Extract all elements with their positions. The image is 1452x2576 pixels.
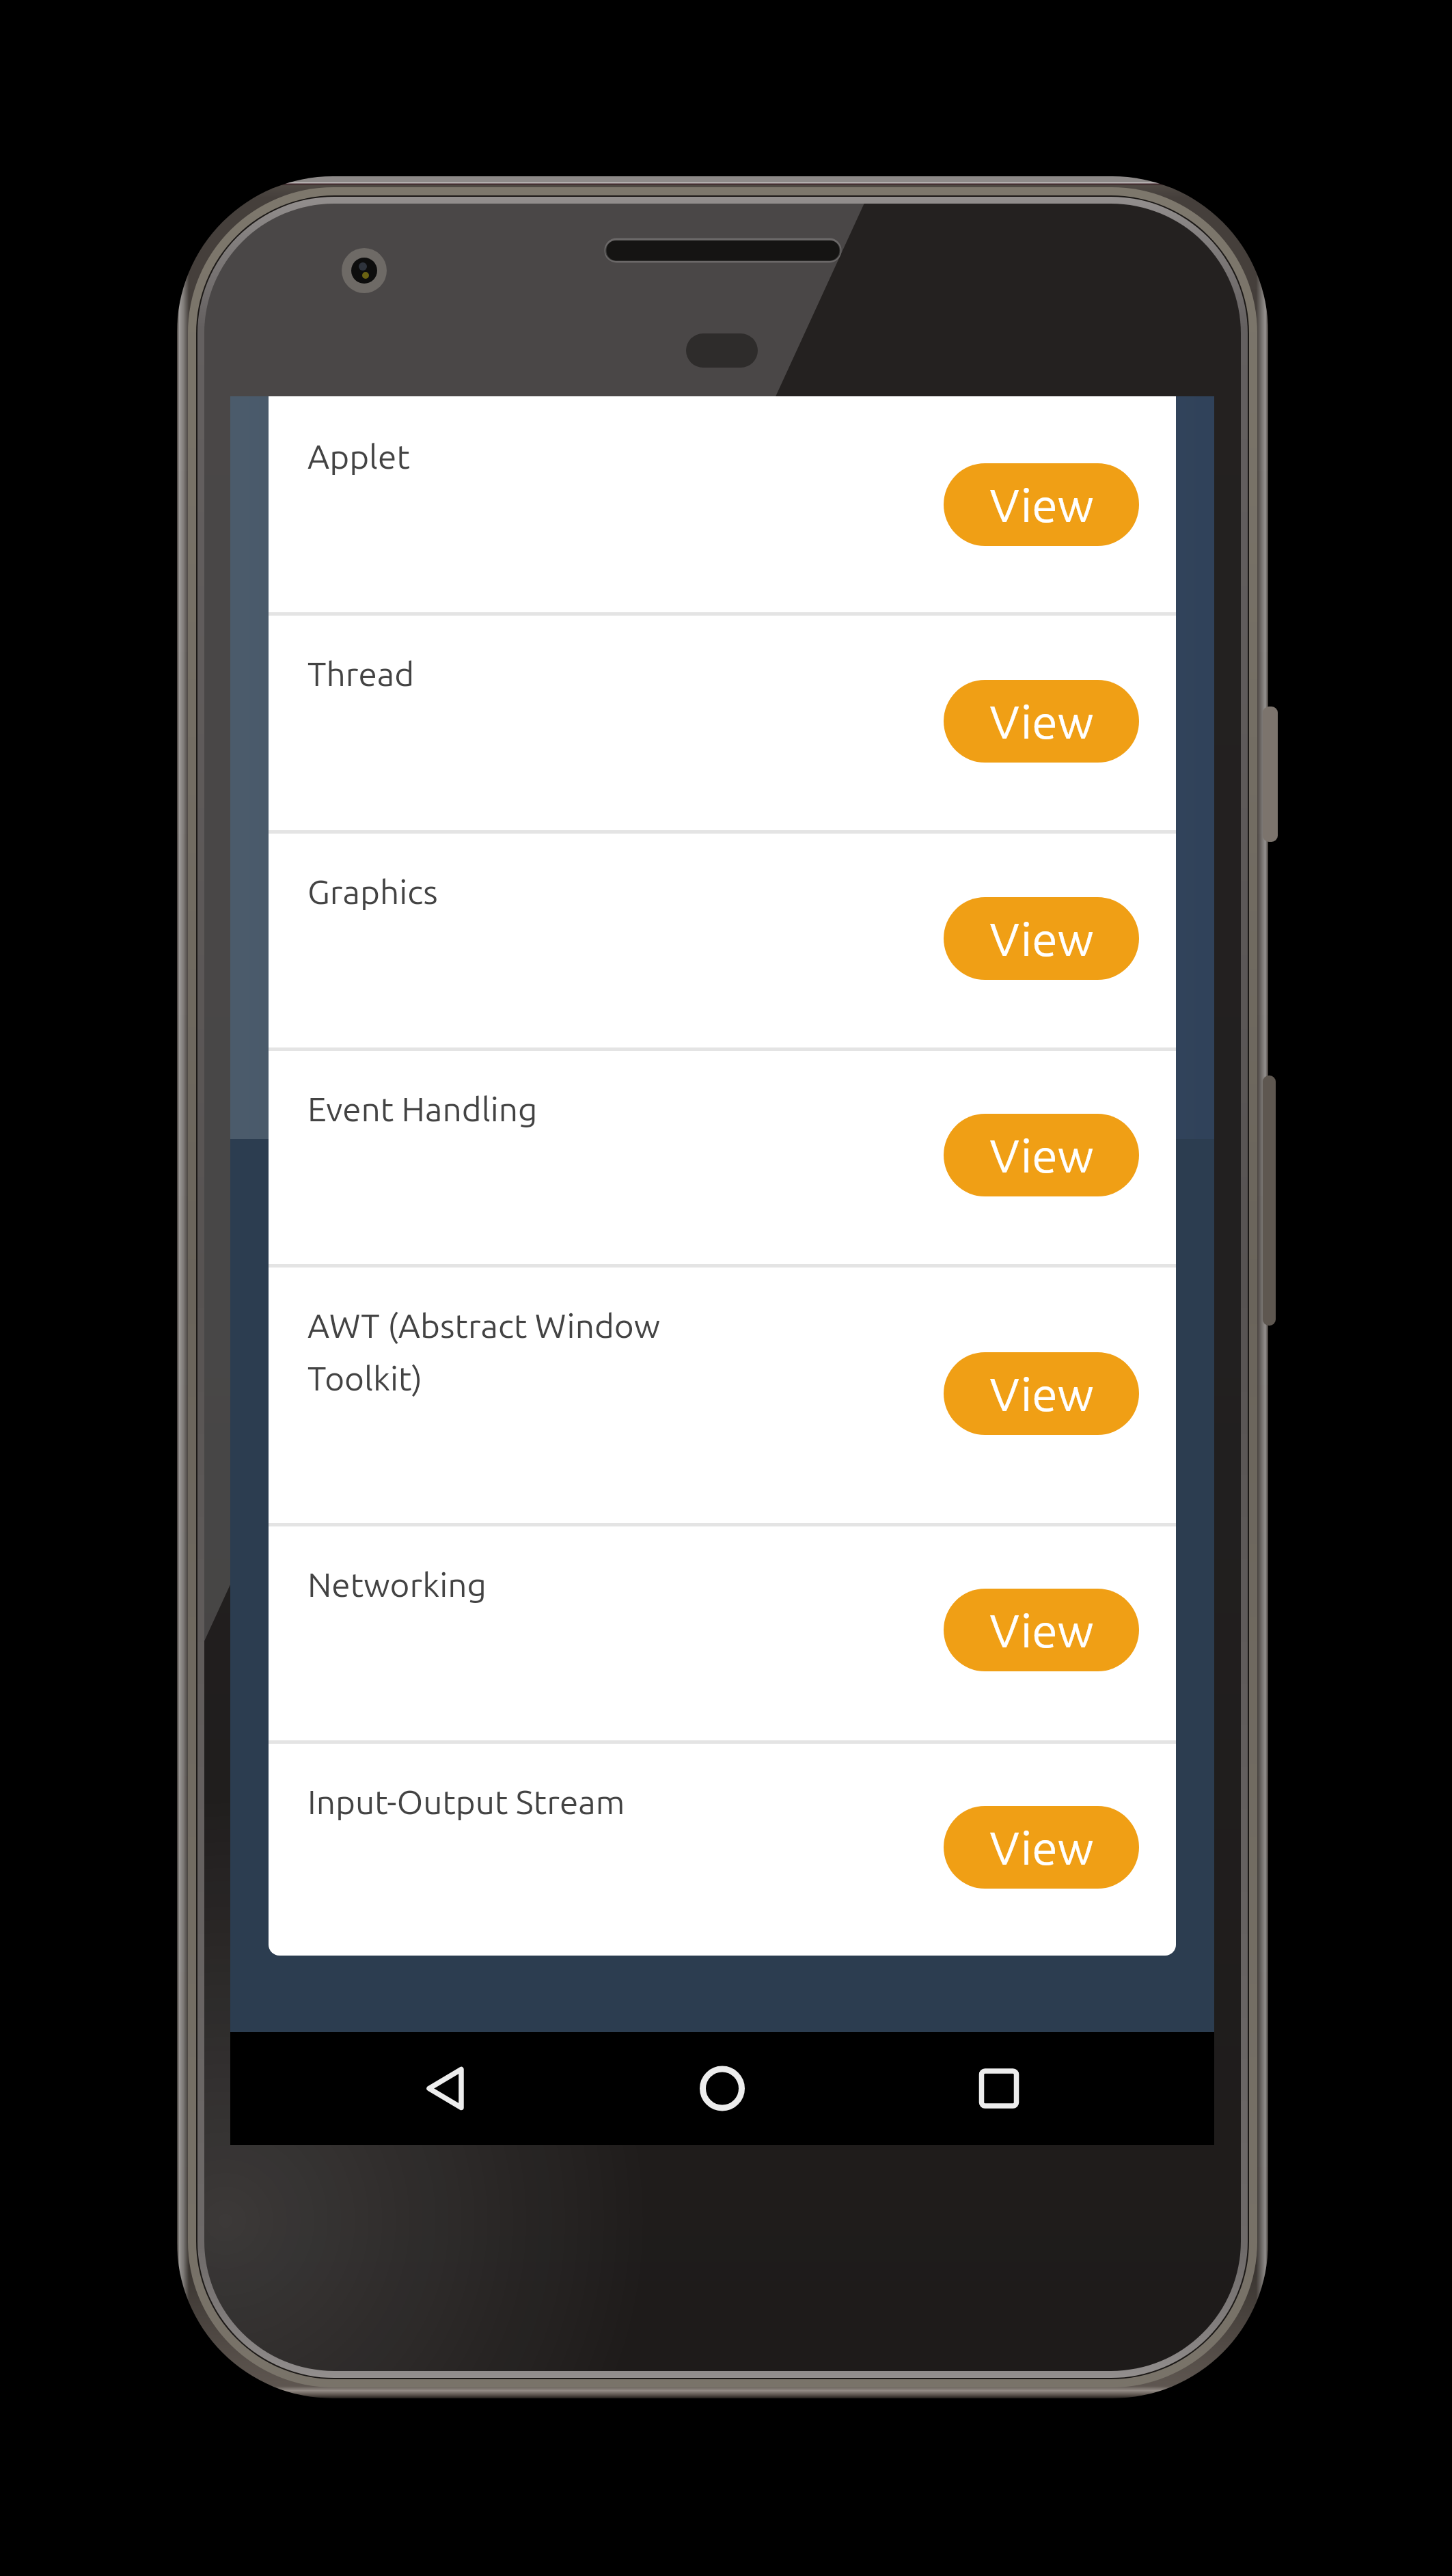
staticText: Input-Output Stream bbox=[307, 1783, 625, 1820]
staticText: Applet bbox=[307, 437, 410, 475]
staticText: Thread bbox=[307, 655, 415, 692]
staticText: View bbox=[989, 1822, 1094, 1874]
staticText: View bbox=[989, 479, 1094, 531]
button[interactable]: View bbox=[944, 1352, 1139, 1435]
button[interactable]: Recent apps bbox=[958, 2032, 1040, 2145]
staticText: Networking bbox=[307, 1565, 487, 1603]
staticText: View bbox=[989, 1368, 1094, 1420]
staticText: View bbox=[989, 696, 1094, 748]
button[interactable]: View bbox=[944, 1589, 1139, 1671]
button[interactable]: View bbox=[944, 1114, 1139, 1196]
button[interactable]: Graphics bbox=[269, 830, 1176, 1047]
button[interactable]: Applet bbox=[269, 396, 1176, 612]
staticText: Graphics bbox=[307, 873, 438, 910]
staticText: View bbox=[989, 1129, 1094, 1181]
staticText: View bbox=[989, 913, 1094, 965]
button[interactable]: Back bbox=[405, 2032, 487, 2145]
button[interactable]: Input-Output Stream bbox=[269, 1740, 1176, 1956]
button[interactable]: Networking bbox=[269, 1523, 1176, 1740]
button[interactable]: Thread bbox=[269, 612, 1176, 830]
button[interactable]: Home bbox=[681, 2032, 763, 2145]
button[interactable]: Event Handling bbox=[269, 1047, 1176, 1264]
staticText: View bbox=[989, 1604, 1094, 1656]
button[interactable]: View bbox=[944, 1806, 1139, 1889]
button[interactable]: View bbox=[944, 897, 1139, 980]
button[interactable]: View bbox=[944, 680, 1139, 763]
staticText: AWT (Abstract Window Toolkit) bbox=[307, 1306, 661, 1397]
staticText: Event Handling bbox=[307, 1090, 538, 1127]
button[interactable]: View bbox=[944, 463, 1139, 546]
button[interactable]: AWT (Abstract Window Toolkit) bbox=[269, 1264, 1176, 1523]
